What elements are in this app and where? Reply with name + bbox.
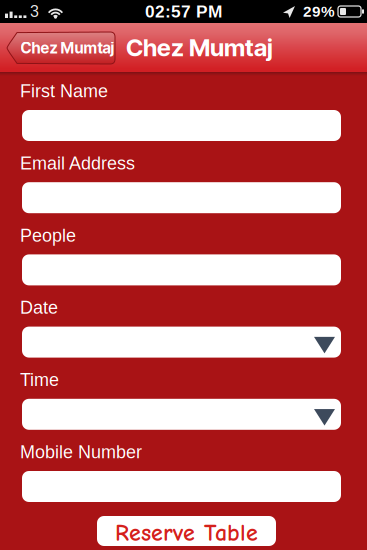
staticText: Date	[20, 297, 58, 318]
staticText: People	[20, 225, 76, 245]
button[interactable]: First Name	[22, 110, 341, 141]
button[interactable]: Chez Mumtaj	[6, 32, 115, 64]
button[interactable]: Mobile Number	[22, 471, 341, 502]
staticText: 29%	[303, 3, 335, 20]
staticText: 3	[30, 3, 39, 20]
staticText: Mobile Number	[20, 442, 142, 462]
staticText: Reserve Table	[115, 519, 258, 547]
button[interactable]: Email Address	[22, 182, 341, 213]
staticText: Email Address	[20, 153, 135, 173]
staticText: First Name	[20, 81, 108, 101]
staticText: Time	[20, 370, 59, 390]
staticText: 02:57 PM	[145, 2, 222, 21]
button[interactable]: Reserve Table	[97, 516, 276, 546]
staticText: Chez Mumtaj	[126, 33, 273, 62]
button[interactable]: Time	[22, 399, 341, 430]
staticText: Chez Mumtaj	[20, 39, 114, 57]
button[interactable]: People	[22, 254, 341, 285]
button[interactable]: Date	[22, 327, 341, 358]
